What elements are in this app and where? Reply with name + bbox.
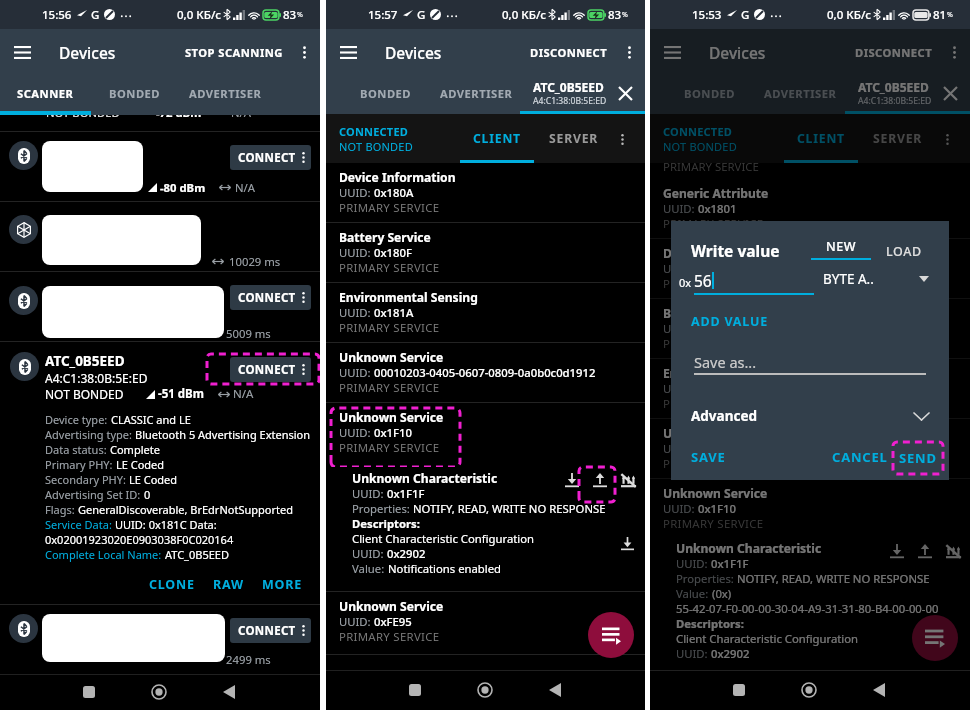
button[interactable]: Advanced (671, 407, 949, 425)
staticText: Notifications enabled (388, 561, 502, 576)
button[interactable]: SAVE (687, 446, 730, 468)
button[interactable]: BONDED (665, 75, 755, 111)
staticText: PRIMARY SERVICE (339, 380, 440, 396)
button[interactable]: Device options (296, 145, 311, 170)
button[interactable]: CLIENT (460, 114, 534, 163)
button[interactable]: Generic Attribute (650, 179, 970, 238)
button[interactable]: Unknown Service (326, 343, 645, 402)
staticText: Device Information (339, 169, 456, 185)
staticText: 0,0 КБ/c (502, 7, 546, 23)
button[interactable]: BYTE A.. (823, 270, 933, 288)
button[interactable]: Unknown Service (326, 592, 645, 651)
staticText: MORE (262, 576, 303, 593)
button[interactable]: SERVER (537, 114, 611, 163)
button[interactable]: DISCONNECT (849, 33, 939, 72)
button[interactable]: Home (468, 673, 502, 707)
button[interactable]: ATC_0B5EED (521, 75, 645, 111)
staticText: UUID: (352, 546, 387, 561)
button[interactable]: More options (939, 37, 970, 68)
button[interactable]: Show log (912, 615, 958, 661)
button[interactable]: Device Information (326, 163, 645, 222)
button[interactable]: DISCONNECT (524, 33, 614, 72)
button[interactable]: Toggle notifications (942, 540, 964, 562)
button[interactable]: CLIENT (784, 114, 858, 163)
button[interactable]: Back (212, 675, 246, 709)
staticText: ADVERTISER (440, 86, 513, 101)
staticText: NOT BONDED (45, 386, 124, 402)
button[interactable]: STOP SCANNING (179, 33, 289, 72)
staticText: PRIMARY SERVICE (663, 216, 764, 232)
button[interactable]: More options (934, 126, 960, 152)
button[interactable]: Open navigation menu (326, 30, 370, 74)
button[interactable]: CONNECT (230, 145, 311, 170)
button[interactable]: CONNECT (230, 618, 311, 643)
button[interactable]: ADVERTISER (431, 75, 521, 111)
button[interactable]: ADVERTISER (180, 75, 270, 111)
button[interactable]: ADVERTISER (755, 75, 845, 111)
button[interactable]: CONNECT (0, 605, 320, 674)
button[interactable]: Back (538, 673, 572, 707)
button[interactable]: 10029 ms (0, 202, 320, 271)
button[interactable]: Device Information (650, 239, 970, 298)
button[interactable]: Open navigation menu (650, 30, 694, 74)
button[interactable]: More options (289, 37, 320, 68)
button[interactable]: Back (862, 673, 896, 707)
button[interactable]: Write (589, 469, 611, 491)
button[interactable]: Environmental Sensing (326, 283, 645, 342)
button[interactable]: More options (614, 37, 645, 68)
button[interactable]: ATC_0B5EED (845, 75, 970, 111)
button[interactable]: Battery Service (326, 223, 645, 282)
staticText: CANCEL (832, 448, 888, 466)
staticText: PRIMARY SERVICE (663, 396, 764, 412)
staticText: BYTE A.. (823, 270, 874, 288)
button[interactable]: Toggle notifications (617, 469, 639, 491)
staticText: CONNECTED (339, 124, 409, 139)
button[interactable]: SCANNER (0, 75, 90, 111)
button[interactable]: CONNECT (0, 272, 320, 341)
staticText: PRIMARY SERVICE (339, 320, 440, 336)
staticText: 00010203-0405-0607-0809-0a0b0c0d1912 (374, 365, 596, 380)
button[interactable]: MORE (253, 573, 312, 596)
button[interactable]: Recent apps (722, 673, 756, 707)
button[interactable]: Write (914, 540, 936, 562)
staticText: Unknown Service (663, 485, 768, 501)
button[interactable]: BONDED (90, 75, 180, 111)
staticText: SERVER (873, 130, 923, 147)
button[interactable]: CLONE (140, 573, 204, 596)
button[interactable]: LOAD (884, 241, 924, 262)
button[interactable]: Device options (296, 357, 311, 382)
button[interactable]: CANCEL (828, 446, 892, 468)
button[interactable]: BONDED (341, 75, 431, 111)
button[interactable]: Read descriptor (617, 533, 637, 553)
button[interactable]: Battery Service (650, 299, 970, 358)
button[interactable]: Recent apps (398, 673, 432, 707)
staticText: UUID: (663, 201, 698, 216)
button[interactable]: Device options (296, 285, 311, 310)
button[interactable]: Home (792, 673, 826, 707)
button[interactable]: Open navigation menu (0, 30, 44, 74)
staticText: Unknown Service (339, 349, 444, 365)
button[interactable]: CONNECT (230, 357, 311, 382)
button[interactable]: SERVER (861, 114, 935, 163)
button[interactable]: CONNECT (230, 285, 311, 310)
button[interactable]: Read (561, 469, 583, 491)
button[interactable]: Unknown Service (650, 419, 970, 478)
button[interactable]: Read (886, 540, 908, 562)
button[interactable]: Recent apps (72, 675, 106, 709)
button[interactable]: Device options (296, 618, 311, 643)
button[interactable]: Environmental Sensing (650, 359, 970, 418)
button[interactable]: Unknown Service (326, 403, 645, 462)
button[interactable]: Unknown Service (650, 479, 970, 538)
staticText: PRIMARY SERVICE (339, 260, 440, 276)
staticText: Battery Service (663, 305, 755, 321)
button[interactable]: SEND (893, 442, 943, 474)
button[interactable]: ADD VALUE (685, 310, 774, 333)
button[interactable]: NEW (811, 233, 871, 260)
button[interactable]: Show log (588, 612, 634, 658)
button[interactable]: RAW (204, 573, 253, 596)
staticText: UUID: (339, 614, 374, 629)
staticText: PRIMARY SERVICE (339, 440, 440, 456)
button[interactable]: More options (609, 126, 635, 152)
button[interactable]: CONNECT (0, 132, 320, 201)
button[interactable]: Home (142, 675, 176, 709)
